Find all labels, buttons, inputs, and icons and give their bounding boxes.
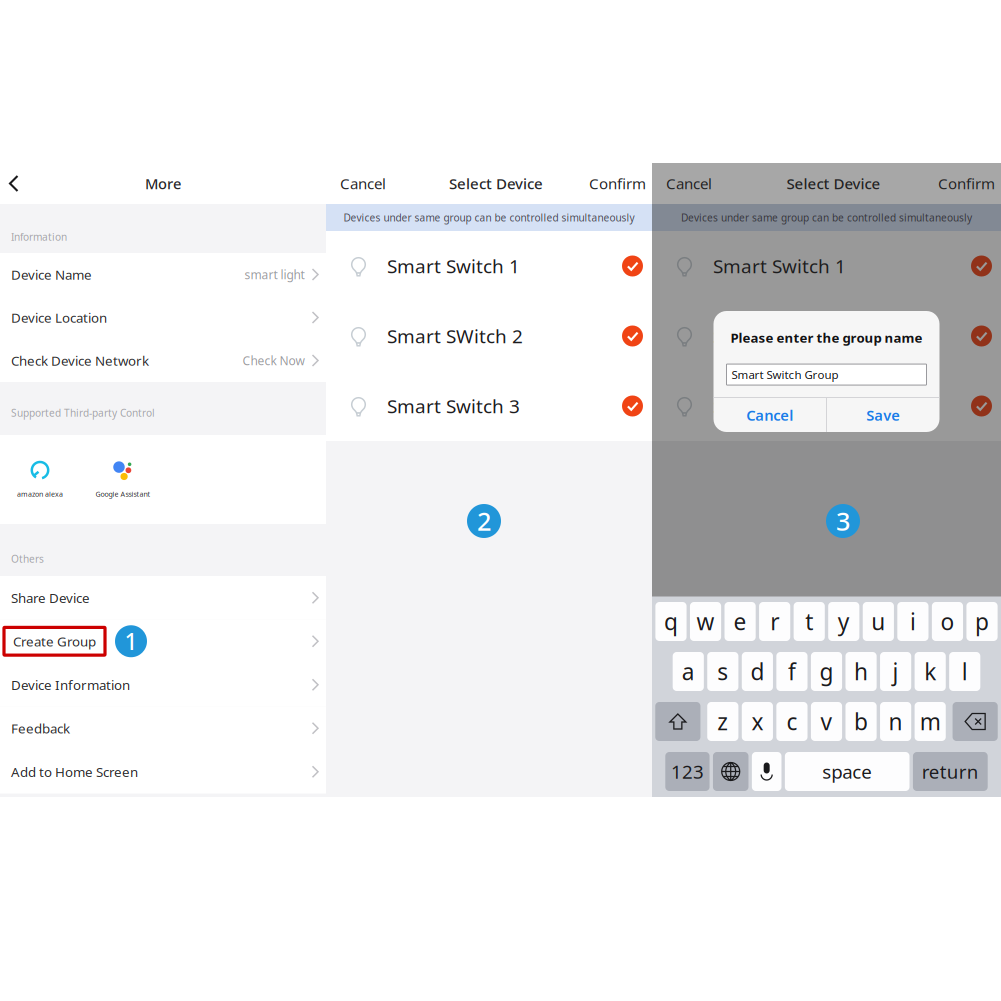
button[interactable]: Share Device	[0, 576, 326, 619]
button[interactable]: d	[742, 652, 773, 691]
staticText: Cancel	[666, 173, 712, 194]
button[interactable]: j	[880, 652, 911, 691]
staticText: Add to Home Screen	[11, 763, 138, 781]
button[interactable]: p	[966, 602, 998, 641]
staticText: Smart Switch Group	[731, 367, 838, 382]
staticText: Devices under same group can be controll…	[343, 211, 634, 224]
staticText: w	[696, 606, 714, 636]
staticText: u	[871, 606, 885, 636]
button[interactable]: Smart Switch 1	[652, 231, 1001, 301]
button[interactable]: m	[915, 702, 946, 741]
staticText: Smart SWitch 2	[387, 323, 523, 349]
staticText: f	[788, 656, 796, 686]
button[interactable]: Confirm	[929, 164, 996, 203]
staticText: Google Assistant	[95, 489, 150, 499]
staticText: q	[664, 606, 678, 636]
staticText: Confirm	[938, 173, 995, 194]
staticText: c	[786, 706, 797, 736]
button[interactable]: c	[776, 702, 808, 741]
staticText: Smart Switch 3	[387, 393, 520, 419]
button[interactable]: Cancel	[657, 164, 721, 203]
button[interactable]: Cancel	[331, 164, 395, 203]
button[interactable]: y	[828, 602, 859, 641]
button[interactable]: Save	[827, 398, 939, 432]
button[interactable]: n	[880, 702, 911, 741]
button[interactable]: Smart Switch 1	[326, 231, 652, 301]
button[interactable]: h	[845, 652, 877, 691]
button[interactable]: Delete	[953, 702, 998, 741]
button[interactable]: Next keyboard	[713, 752, 748, 791]
button[interactable]: Check Device Network	[0, 339, 326, 382]
button[interactable]: Smart SWitch 2	[326, 301, 652, 371]
button[interactable]: Device Information	[0, 663, 326, 706]
button[interactable]: Device Location	[0, 296, 326, 339]
button[interactable]: Smart Switch 3	[326, 371, 652, 441]
staticText: Feedback	[11, 719, 70, 737]
staticText: Smart Switch 1	[387, 253, 520, 279]
staticText: Confirm	[589, 173, 646, 194]
button[interactable]: q	[655, 602, 687, 641]
button[interactable]: s	[707, 652, 738, 691]
staticText: Others	[11, 552, 44, 566]
button[interactable]: b	[845, 702, 877, 741]
button[interactable]: Smart Switch 3	[652, 371, 1001, 441]
button[interactable]: k	[915, 652, 946, 691]
button[interactable]: Feedback	[0, 706, 326, 750]
button[interactable]: u	[863, 602, 894, 641]
button[interactable]: f	[776, 652, 808, 691]
staticText: 2	[477, 504, 491, 538]
staticText: return	[922, 759, 979, 784]
button[interactable]: Confirm	[580, 164, 647, 203]
staticText: amazon alexa	[17, 489, 63, 499]
button[interactable]: e	[724, 602, 756, 641]
staticText: Cancel	[746, 405, 793, 425]
button[interactable]: r	[759, 602, 790, 641]
staticText: Information	[11, 230, 67, 244]
staticText: Cancel	[340, 173, 386, 194]
staticText: Select Device	[449, 173, 543, 194]
button[interactable]: o	[932, 602, 963, 641]
staticText: Select Device	[786, 173, 880, 194]
staticText: d	[750, 656, 764, 686]
staticText: smart light	[244, 266, 304, 282]
staticText: a	[682, 656, 695, 686]
staticText: Devices under same group can be controll…	[681, 211, 972, 224]
button[interactable]: l	[949, 652, 980, 691]
staticText: b	[854, 706, 868, 736]
button[interactable]: v	[811, 702, 842, 741]
staticText: Check Now	[242, 352, 304, 368]
button[interactable]: Back	[5, 167, 31, 200]
button[interactable]: a	[673, 652, 704, 691]
staticText: i	[910, 606, 916, 636]
staticText: 1	[124, 626, 137, 656]
button[interactable]: z	[707, 702, 738, 741]
staticText: z	[717, 706, 728, 736]
button[interactable]: g	[811, 652, 842, 691]
button[interactable]: Add to Home Screen	[0, 750, 326, 793]
button[interactable]: Smart SWitch 2	[652, 301, 1001, 371]
staticText: More	[145, 174, 181, 193]
staticText: e	[734, 606, 747, 636]
button[interactable]: t	[794, 602, 825, 641]
staticText: Please enter the group name	[730, 329, 922, 347]
staticText: s	[717, 656, 728, 686]
staticText: Device Location	[11, 309, 107, 326]
button[interactable]: Device Name	[0, 253, 326, 296]
staticText: t	[805, 606, 813, 636]
button[interactable]: w	[690, 602, 721, 641]
staticText: k	[924, 656, 936, 686]
staticText: Smart SWitch 2	[713, 323, 849, 349]
button[interactable]: x	[742, 702, 773, 741]
button[interactable]: i	[897, 602, 928, 641]
staticText: g	[819, 656, 833, 686]
staticText: o	[940, 606, 954, 636]
button[interactable]: 123	[665, 752, 709, 791]
staticText: h	[854, 656, 868, 686]
button[interactable]: Create Group	[0, 619, 326, 663]
button[interactable]: return	[913, 752, 988, 791]
button[interactable]: Cancel	[713, 398, 826, 432]
button[interactable]: Shift	[655, 702, 700, 741]
button[interactable]: Dictation	[752, 752, 781, 791]
staticText: m	[920, 706, 941, 736]
button[interactable]: space	[785, 752, 909, 791]
